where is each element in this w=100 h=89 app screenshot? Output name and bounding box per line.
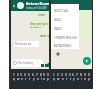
button[interactable]: ITALIC <box>54 24 79 33</box>
staticText: w <box>57 77 60 81</box>
button[interactable]: Send <box>47 63 51 67</box>
button[interactable]: they can't give you <box>29 21 50 29</box>
staticText: y <box>33 77 35 81</box>
staticText: 9 <box>84 73 86 77</box>
staticText: 3 <box>20 73 22 77</box>
staticText: 0 <box>88 73 90 77</box>
staticText: Artem Kuzn <box>26 1 50 6</box>
staticText: 4 <box>24 73 26 77</box>
button[interactable]: The making <box>12 59 43 67</box>
staticText: MONOSPACE <box>54 44 72 48</box>
button[interactable]: MONOSPACE <box>54 42 79 49</box>
staticText: 8 <box>40 73 42 77</box>
staticText: q <box>13 77 15 81</box>
staticText: 6 <box>72 73 74 77</box>
staticText: t <box>29 77 31 81</box>
staticText: i <box>81 77 82 81</box>
staticText: 1 <box>13 73 15 77</box>
staticText: 0 <box>47 73 49 77</box>
staticText: 2 <box>57 73 59 77</box>
staticText: The making <box>18 61 33 65</box>
staticText: 5 <box>69 73 71 77</box>
staticText: e <box>21 77 23 81</box>
button[interactable]: Send <box>83 57 91 65</box>
staticText: y <box>73 77 75 81</box>
staticText: SELECT ALL <box>54 9 69 13</box>
staticText: o <box>84 77 86 81</box>
staticText: i <box>41 77 42 81</box>
staticText: 6 <box>32 73 34 77</box>
staticText: o <box>43 77 45 81</box>
staticText: the final ramps, <box>30 26 49 28</box>
staticText: 5 <box>28 73 30 77</box>
button[interactable]: There are no bases <box>14 41 39 47</box>
staticText: r <box>25 77 27 81</box>
staticText: BOLD <box>54 18 62 22</box>
staticText: p <box>47 77 49 81</box>
staticText: what is <box>40 34 49 37</box>
staticText: There are no bases <box>15 42 38 46</box>
staticText: e <box>62 77 64 81</box>
staticText: w <box>17 77 20 81</box>
staticText: great fun <box>38 13 49 16</box>
staticText: u <box>37 77 39 81</box>
button[interactable]: SELECT ALL <box>54 6 79 15</box>
staticText: 3 <box>61 73 63 77</box>
button[interactable]: BOLD <box>54 15 79 24</box>
other: Attach <box>56 52 60 56</box>
staticText: u <box>77 77 79 81</box>
button[interactable]: great fun <box>37 12 50 17</box>
staticText: q <box>53 77 55 81</box>
staticText: p <box>88 77 90 81</box>
button[interactable]: STRIKETHROUGH <box>54 33 79 42</box>
staticText: 4 <box>65 73 67 77</box>
staticText: ITALIC <box>54 27 63 31</box>
staticText: 2 <box>17 73 19 77</box>
staticText: 9 <box>43 73 45 77</box>
staticText: t <box>70 77 72 81</box>
button[interactable]: Back <box>11 0 51 11</box>
staticText: r <box>66 77 68 81</box>
staticText: 7 <box>76 73 78 77</box>
staticText: they can't give you <box>30 22 49 26</box>
staticText: 8 <box>80 73 82 77</box>
staticText: STRIKETHROUGH <box>54 36 77 40</box>
button[interactable]: what is <box>39 33 50 38</box>
staticText: 7 <box>36 73 38 77</box>
other: Back <box>12 4 16 8</box>
staticText: today at 5:02 AM <box>26 6 47 10</box>
staticText: 1 <box>53 73 55 77</box>
